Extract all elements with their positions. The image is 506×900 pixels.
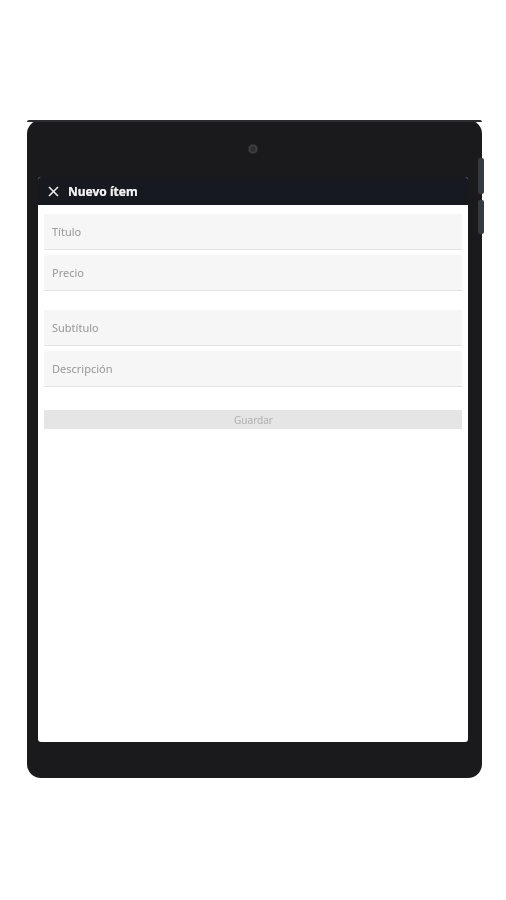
staticText: Descripción (52, 361, 113, 376)
button[interactable]: Close (38, 177, 68, 205)
staticText: Subtítulo (52, 320, 99, 335)
staticText: Guardar (234, 413, 273, 427)
button[interactable]: Subtítulo (44, 310, 462, 346)
button[interactable]: Guardar (44, 410, 462, 429)
other: Power button (478, 200, 484, 234)
other: Volume button (478, 158, 484, 194)
staticText: Precio (52, 265, 84, 280)
staticText: Nuevo ítem (68, 183, 138, 199)
button[interactable]: Close (38, 177, 468, 205)
button[interactable]: Precio (44, 255, 462, 291)
button[interactable]: Descripción (44, 351, 462, 387)
button[interactable]: Título (44, 214, 462, 250)
staticText: Título (52, 224, 82, 239)
